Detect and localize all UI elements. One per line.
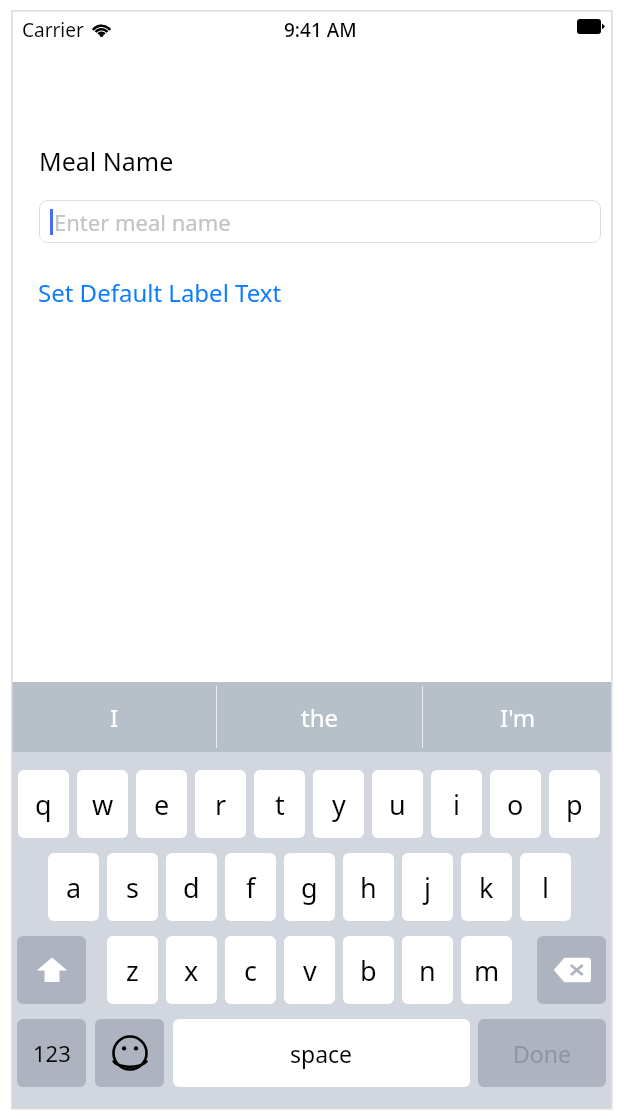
staticText: e xyxy=(154,786,170,823)
staticText: q xyxy=(35,786,52,823)
staticText: I'm xyxy=(500,701,536,734)
staticText: p xyxy=(566,786,583,823)
staticText: d xyxy=(183,869,200,906)
staticText: Set Default Label Text xyxy=(38,276,282,309)
button[interactable]: r xyxy=(195,770,246,838)
staticText: I xyxy=(110,701,119,734)
staticText: h xyxy=(360,869,377,906)
button[interactable]: x xyxy=(166,936,217,1004)
button[interactable]: t xyxy=(254,770,305,838)
staticText: Carrier xyxy=(22,17,84,43)
button[interactable]: v xyxy=(284,936,335,1004)
staticText: space xyxy=(290,1038,353,1069)
button[interactable]: z xyxy=(107,936,158,1004)
button[interactable]: b xyxy=(343,936,394,1004)
button[interactable]: q xyxy=(18,770,69,838)
button[interactable]: i xyxy=(431,770,482,838)
staticText: the xyxy=(301,701,339,734)
staticText: l xyxy=(542,869,549,906)
staticText: x xyxy=(184,952,199,989)
staticText: o xyxy=(507,786,524,823)
button[interactable]: the xyxy=(218,682,422,752)
button[interactable]: 123 xyxy=(17,1019,86,1087)
button[interactable]: space xyxy=(173,1019,470,1087)
button[interactable]: k xyxy=(461,853,512,921)
button[interactable]: d xyxy=(166,853,217,921)
button[interactable]: m xyxy=(461,936,512,1004)
button[interactable]: Done xyxy=(478,1019,606,1087)
staticText: n xyxy=(419,952,436,989)
button[interactable]: j xyxy=(402,853,453,921)
staticText: w xyxy=(92,786,114,823)
button[interactable]: a xyxy=(48,853,99,921)
staticText: c xyxy=(244,952,257,989)
button[interactable]: e xyxy=(136,770,187,838)
button[interactable]: w xyxy=(77,770,128,838)
button[interactable]: u xyxy=(372,770,423,838)
staticText: r xyxy=(215,786,227,823)
staticText: s xyxy=(126,869,139,906)
button[interactable]: Enter meal name xyxy=(39,200,601,243)
button[interactable]: p xyxy=(549,770,600,838)
button[interactable]: Set Default Label Text xyxy=(38,276,282,309)
staticText: t xyxy=(275,786,285,823)
button[interactable]: n xyxy=(402,936,453,1004)
staticText: k xyxy=(479,869,494,906)
button[interactable]: I xyxy=(12,682,216,752)
button[interactable]: c xyxy=(225,936,276,1004)
staticText: Done xyxy=(513,1038,571,1069)
button[interactable]: o xyxy=(490,770,541,838)
staticText: Meal Name xyxy=(39,144,174,178)
staticText: f xyxy=(246,869,256,906)
staticText: 9:41 AM xyxy=(284,17,357,43)
button[interactable]: I'm xyxy=(424,682,611,752)
staticText: m xyxy=(474,952,500,989)
staticText: 123 xyxy=(33,1038,71,1068)
staticText: u xyxy=(389,786,406,823)
button[interactable]: Backspace xyxy=(537,936,606,1004)
staticText: y xyxy=(332,786,346,823)
staticText: a xyxy=(66,869,82,906)
button[interactable]: Shift xyxy=(17,936,86,1004)
staticText: g xyxy=(301,869,318,906)
button[interactable]: g xyxy=(284,853,335,921)
button[interactable]: s xyxy=(107,853,158,921)
staticText: b xyxy=(360,952,377,989)
button[interactable]: h xyxy=(343,853,394,921)
staticText: z xyxy=(126,952,139,989)
staticText: v xyxy=(303,952,317,989)
staticText: Enter meal name xyxy=(54,207,231,237)
button[interactable]: f xyxy=(225,853,276,921)
button[interactable]: y xyxy=(313,770,364,838)
button[interactable]: l xyxy=(520,853,571,921)
button[interactable]: Emoji xyxy=(95,1019,164,1087)
staticText: j xyxy=(424,869,431,906)
staticText: i xyxy=(453,786,460,823)
